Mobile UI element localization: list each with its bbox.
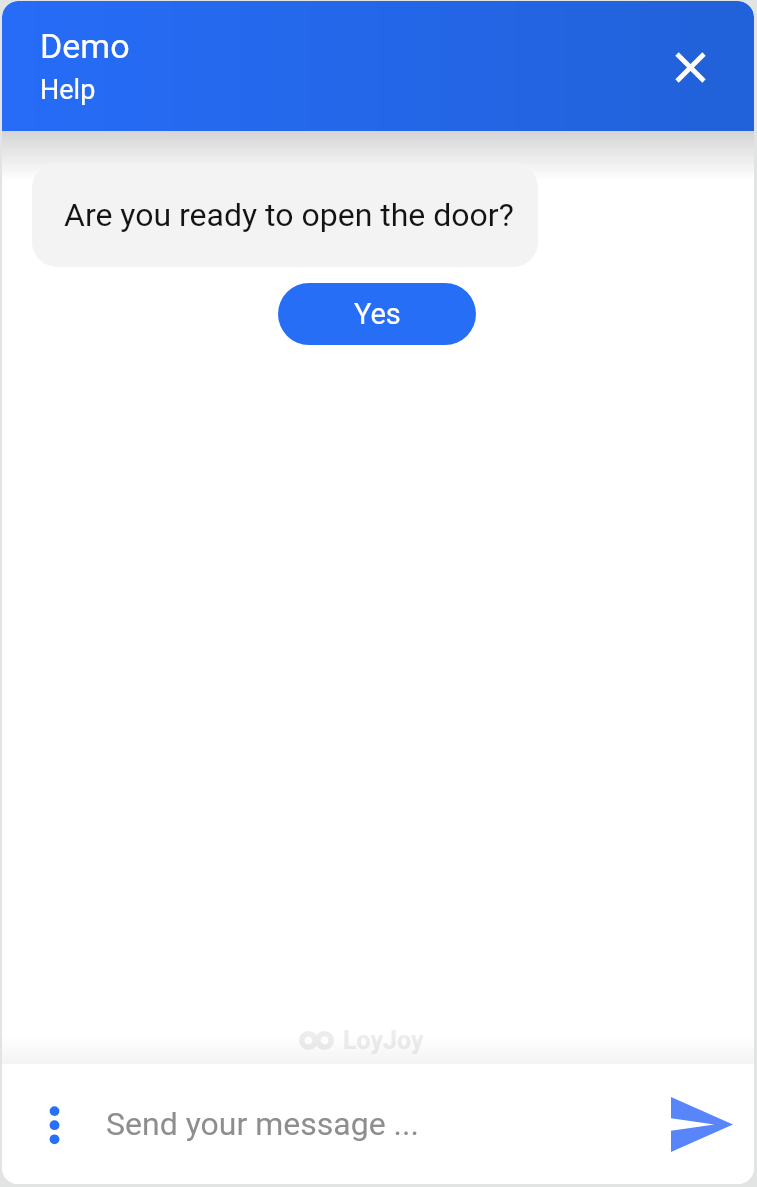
staticText: Help [40,74,96,106]
button[interactable]: Send [667,1089,736,1159]
staticText: Send your message ... [106,1105,667,1143]
button[interactable]: Close [662,39,718,95]
staticText: LoyJoy [343,1026,424,1055]
button[interactable]: Yes [278,283,476,345]
staticText: Yes [354,297,401,331]
button[interactable]: Are you ready to open the door? [32,163,538,267]
button[interactable]: More options [31,1095,78,1153]
staticText: Are you ready to open the door? [64,196,514,234]
staticText: Demo [40,26,130,66]
